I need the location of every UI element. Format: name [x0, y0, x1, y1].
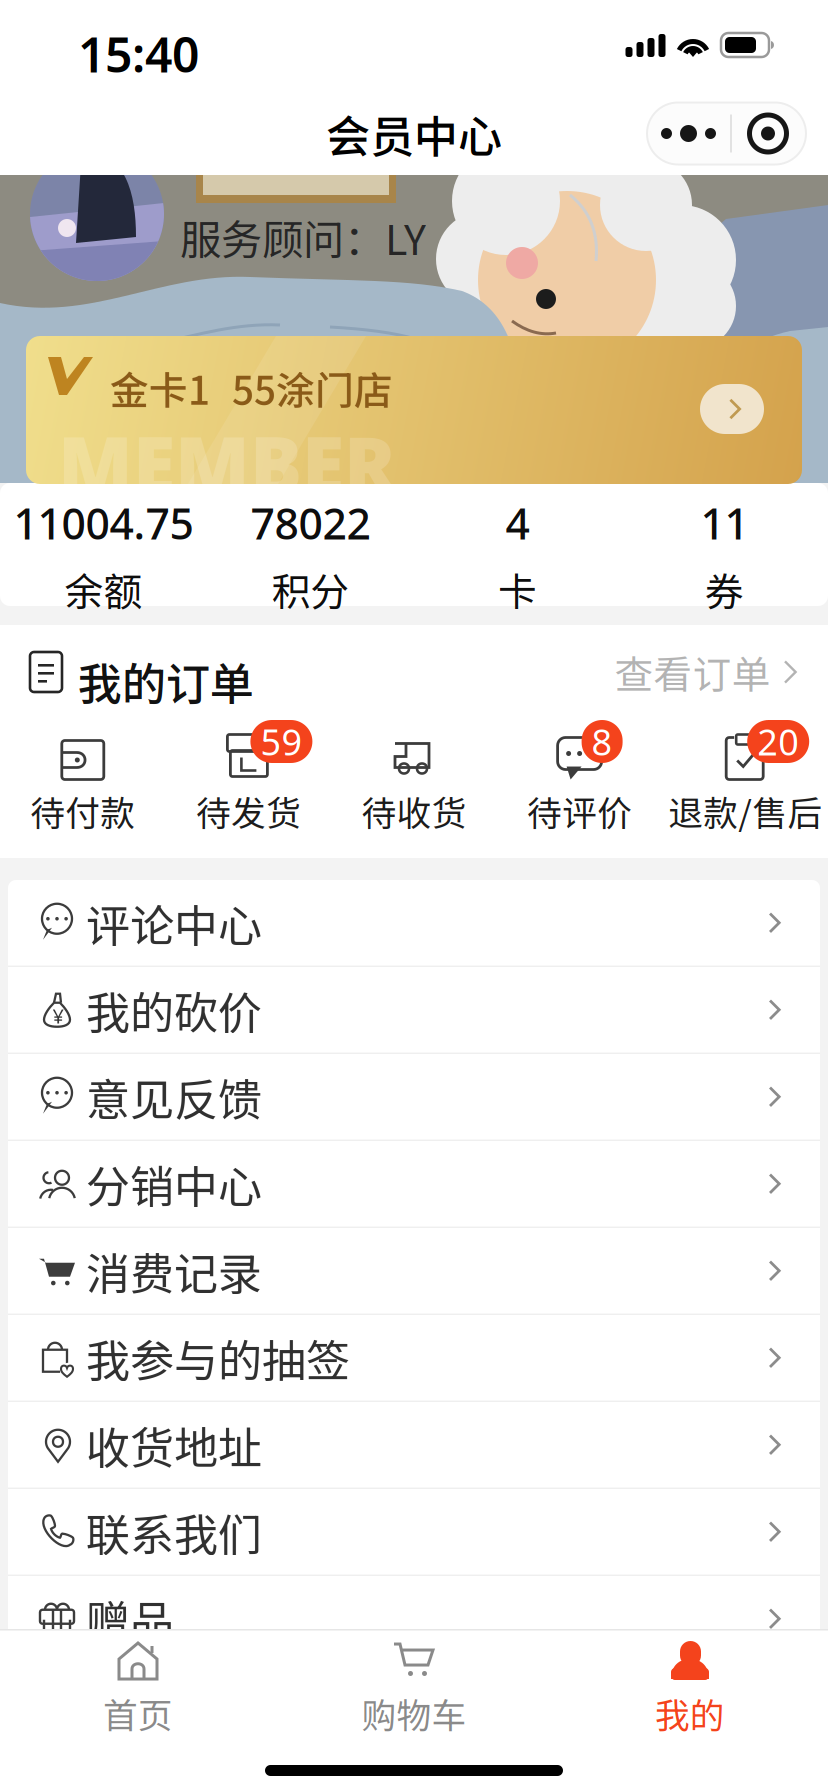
staticText: 我的砍价	[86, 978, 262, 1042]
button[interactable]: 59	[166, 733, 331, 841]
staticText: 我参与的抽签	[86, 1326, 350, 1390]
staticText: 59	[260, 718, 302, 765]
staticText: 查看订单	[615, 644, 771, 700]
button[interactable]: 意见反馈	[8, 1054, 820, 1141]
button[interactable]: 20	[662, 733, 828, 841]
staticText: 55涂门店	[232, 360, 393, 416]
button[interactable]: 赠品	[8, 1576, 820, 1663]
staticText: 服务顾问：LY	[180, 207, 426, 267]
staticText: MEMBER	[58, 412, 396, 515]
staticText: 会员中心	[326, 102, 502, 165]
staticText: 评论中心	[86, 891, 262, 955]
staticText: 78022	[250, 494, 370, 551]
button[interactable]: 我的	[552, 1640, 828, 1738]
button[interactable]: Close mini program	[730, 102, 806, 164]
button[interactable]: ¥	[8, 967, 820, 1054]
button[interactable]: 评论中心	[8, 880, 820, 967]
staticText: 购物车	[361, 1688, 466, 1738]
staticText: 卡	[498, 561, 537, 617]
button[interactable]: 查看订单	[0, 649, 798, 695]
staticText: 8	[592, 718, 613, 765]
button[interactable]: 我参与的抽签	[8, 1315, 820, 1402]
staticText: 15:40	[78, 22, 199, 86]
button[interactable]: 分销中心	[8, 1141, 820, 1228]
staticText: 待付款	[30, 786, 135, 836]
staticText: 待评价	[527, 786, 632, 836]
staticText: 首页	[103, 1688, 173, 1738]
staticText: 赠品	[86, 1587, 174, 1651]
staticText: 意见反馈	[86, 1065, 262, 1129]
staticText: 20	[757, 718, 799, 765]
staticText: 消费记录	[86, 1239, 262, 1303]
button[interactable]: MEMBER	[26, 336, 802, 484]
staticText: ¥	[52, 1002, 63, 1029]
staticText: 积分	[271, 561, 349, 617]
button[interactable]: 11	[621, 494, 828, 617]
staticText: 分销中心	[86, 1152, 262, 1216]
staticText: 4	[505, 494, 529, 551]
staticText: 退款/售后	[668, 786, 822, 836]
button[interactable]: 消费记录	[8, 1228, 820, 1315]
staticText: 待发货	[196, 786, 301, 836]
button[interactable]: 待收货	[331, 733, 497, 841]
staticText: 我的	[655, 1688, 725, 1738]
staticText: 金卡1	[110, 360, 210, 416]
button[interactable]: 8	[497, 733, 662, 841]
button[interactable]: 购物车	[276, 1640, 552, 1738]
button[interactable]: 4	[414, 494, 621, 617]
button[interactable]: 78022	[207, 494, 414, 617]
staticText: 待收货	[361, 786, 466, 836]
button[interactable]: 首页	[0, 1640, 276, 1738]
staticText: 11	[700, 494, 748, 551]
button[interactable]: 待付款	[0, 733, 166, 841]
button[interactable]: 收货地址	[8, 1402, 820, 1489]
staticText: 我的订单	[78, 649, 254, 713]
button[interactable]: 11004.75	[0, 494, 207, 617]
button[interactable]: 联系我们	[8, 1489, 820, 1576]
button[interactable]: More options	[647, 102, 730, 164]
staticText: 11004.75	[13, 494, 193, 551]
staticText: 联系我们	[86, 1500, 262, 1564]
staticText: 收货地址	[86, 1413, 262, 1477]
staticText: 余额	[64, 561, 142, 617]
staticText: 券	[705, 561, 744, 617]
